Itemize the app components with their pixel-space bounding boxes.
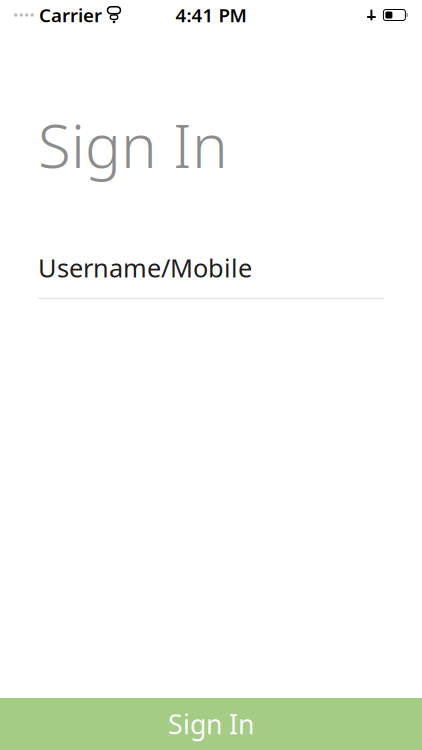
button[interactable]: Username/Mobile bbox=[38, 255, 384, 299]
staticText: Username/Mobile bbox=[38, 251, 252, 284]
staticText: 4:41 PM bbox=[175, 3, 246, 27]
staticText: Carrier bbox=[39, 3, 102, 27]
button[interactable]: Sign In bbox=[0, 698, 422, 750]
staticText: Sign In bbox=[168, 706, 254, 742]
staticText: Sign In bbox=[38, 105, 228, 185]
